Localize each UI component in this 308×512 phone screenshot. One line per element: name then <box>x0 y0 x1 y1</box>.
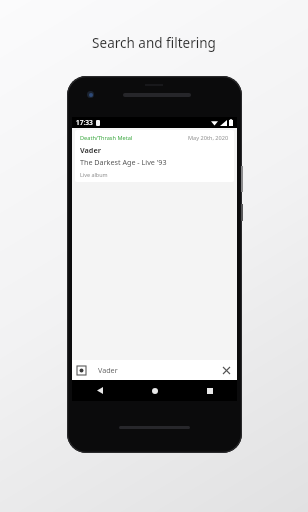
staticText: May 20th, 2020 <box>188 134 229 142</box>
button[interactable]: Home <box>127 380 182 401</box>
staticText: Live album <box>80 171 108 178</box>
staticText: The Darkest Age - Live '93 <box>80 157 167 167</box>
staticText: Vader <box>80 145 101 155</box>
staticText: Death/Thrash Metal <box>80 134 133 142</box>
button[interactable]: Vader <box>98 365 221 375</box>
staticText: Vader <box>98 365 118 375</box>
staticText: 17:33 <box>76 118 93 127</box>
button[interactable]: Toggle search mode <box>77 366 86 375</box>
button[interactable]: Back <box>72 380 127 401</box>
button[interactable]: Recent apps <box>182 380 237 401</box>
button[interactable]: Clear search <box>221 365 232 376</box>
button[interactable]: Death/Thrash Metal <box>75 130 234 182</box>
staticText: Search and filtering <box>0 34 308 52</box>
